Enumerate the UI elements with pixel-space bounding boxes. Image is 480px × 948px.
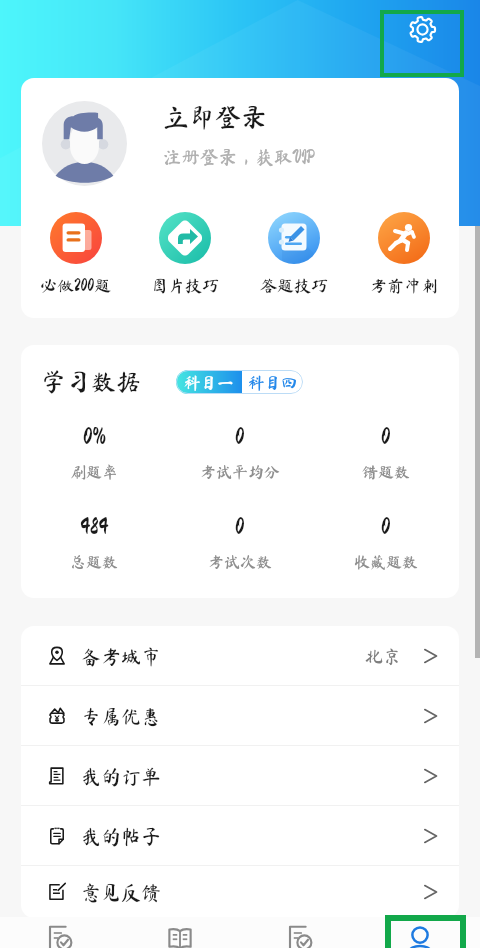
staticText: 科目一: [184, 374, 234, 390]
button[interactable]: 科目一: [176, 370, 242, 394]
staticText: 考前冲刺: [370, 277, 438, 294]
staticText: 备考城市: [81, 646, 161, 666]
staticText: 答题技巧: [260, 277, 328, 294]
staticText: 专属优惠: [81, 706, 161, 726]
button[interactable]: 专属优惠: [21, 686, 459, 745]
button[interactable]: 答题技巧: [239, 212, 349, 294]
staticText: 学习数据: [41, 369, 142, 394]
button[interactable]: Mock exam: [240, 917, 360, 948]
staticText: 484: [80, 515, 109, 538]
staticText: 刷题率: [70, 464, 119, 480]
staticText: 0: [381, 515, 391, 538]
staticText: 我的订单: [81, 766, 161, 786]
staticText: 考试平均分: [200, 464, 281, 480]
button[interactable]: 考前冲刺: [349, 212, 459, 294]
button[interactable]: 我的帖子: [21, 806, 459, 865]
button[interactable]: Study materials: [120, 917, 240, 948]
button[interactable]: 科目四: [242, 370, 303, 394]
staticText: 考试次数: [208, 554, 273, 570]
button[interactable]: 必做200题: [21, 212, 130, 294]
staticText: 图片技巧: [151, 277, 219, 294]
staticText: 立即登录: [163, 104, 268, 130]
staticText: 0: [381, 425, 391, 448]
button[interactable]: 立即登录: [42, 101, 442, 186]
staticText: 0: [235, 425, 245, 448]
staticText: 收藏题数: [354, 554, 419, 570]
button[interactable]: 意见反馈: [21, 866, 459, 918]
button[interactable]: Settings: [380, 10, 464, 77]
button[interactable]: Profile: [360, 917, 480, 948]
button[interactable]: 备考城市: [21, 626, 459, 685]
staticText: 错题数: [362, 464, 411, 480]
staticText: 我的帖子: [81, 826, 161, 846]
button[interactable]: 图片技巧: [130, 212, 239, 294]
button[interactable]: Practice questions: [0, 917, 120, 948]
staticText: 北京: [365, 647, 401, 665]
staticText: 0%: [83, 425, 106, 448]
staticText: 0: [235, 515, 245, 538]
staticText: 意见反馈: [81, 882, 161, 902]
staticText: 科目四: [248, 374, 298, 390]
staticText: 必做200题: [40, 277, 112, 294]
staticText: 总题数: [70, 554, 119, 570]
button[interactable]: 我的订单: [21, 746, 459, 805]
staticText: 注册登录，获取VIP: [163, 148, 315, 167]
